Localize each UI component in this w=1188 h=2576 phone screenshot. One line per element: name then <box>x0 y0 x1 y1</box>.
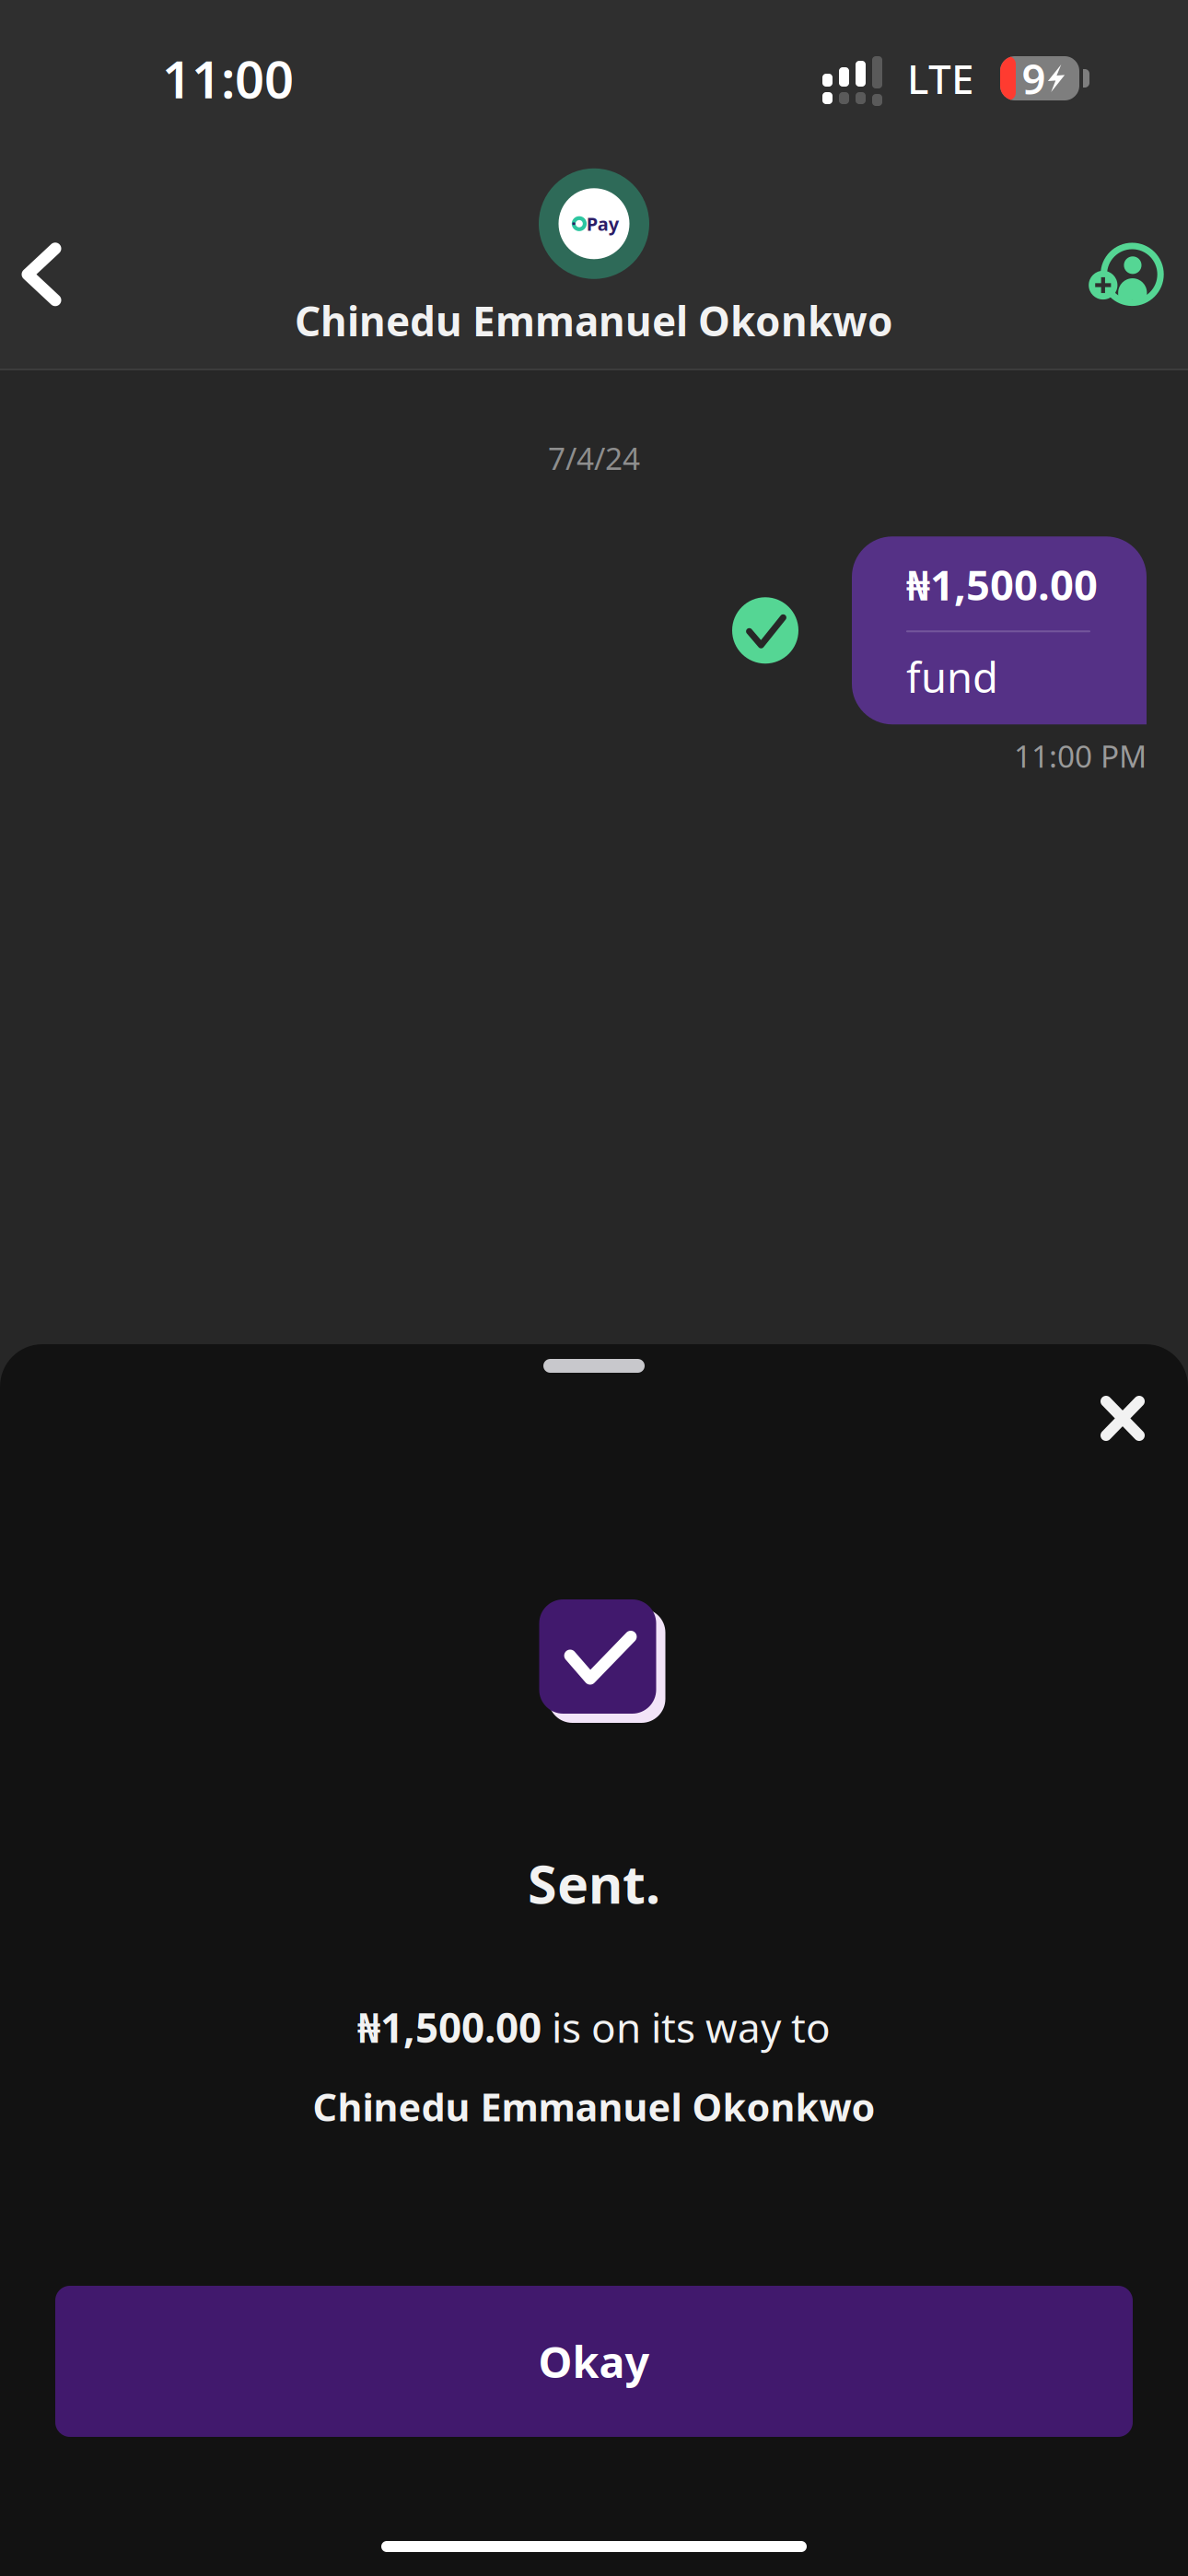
staticText: ₦1,500.00 <box>357 2000 542 2054</box>
staticText: fund <box>906 649 998 704</box>
staticText: Okay <box>538 2333 650 2390</box>
staticText: ₦1,500.00 <box>906 557 1098 612</box>
staticText: is on its way to <box>542 2000 831 2054</box>
staticText: Pay <box>586 211 619 236</box>
staticText: 7/4/24 <box>548 438 640 478</box>
staticText: Chinedu Emmanuel Okonkwo <box>313 2081 875 2132</box>
button[interactable]: Add contact <box>1071 213 1188 336</box>
staticText: LTE <box>907 51 974 105</box>
staticText: 11:00 PM <box>1014 735 1147 776</box>
button[interactable]: Back <box>0 210 92 339</box>
staticText: 11:00 <box>162 44 294 113</box>
staticText: Sent. <box>528 1848 660 1918</box>
staticText: Chinedu Emmanuel Okonkwo <box>295 294 893 348</box>
staticText: 9 <box>1022 51 1046 106</box>
button[interactable]: Okay <box>55 2286 1133 2437</box>
button[interactable]: Close <box>1077 1372 1169 1465</box>
